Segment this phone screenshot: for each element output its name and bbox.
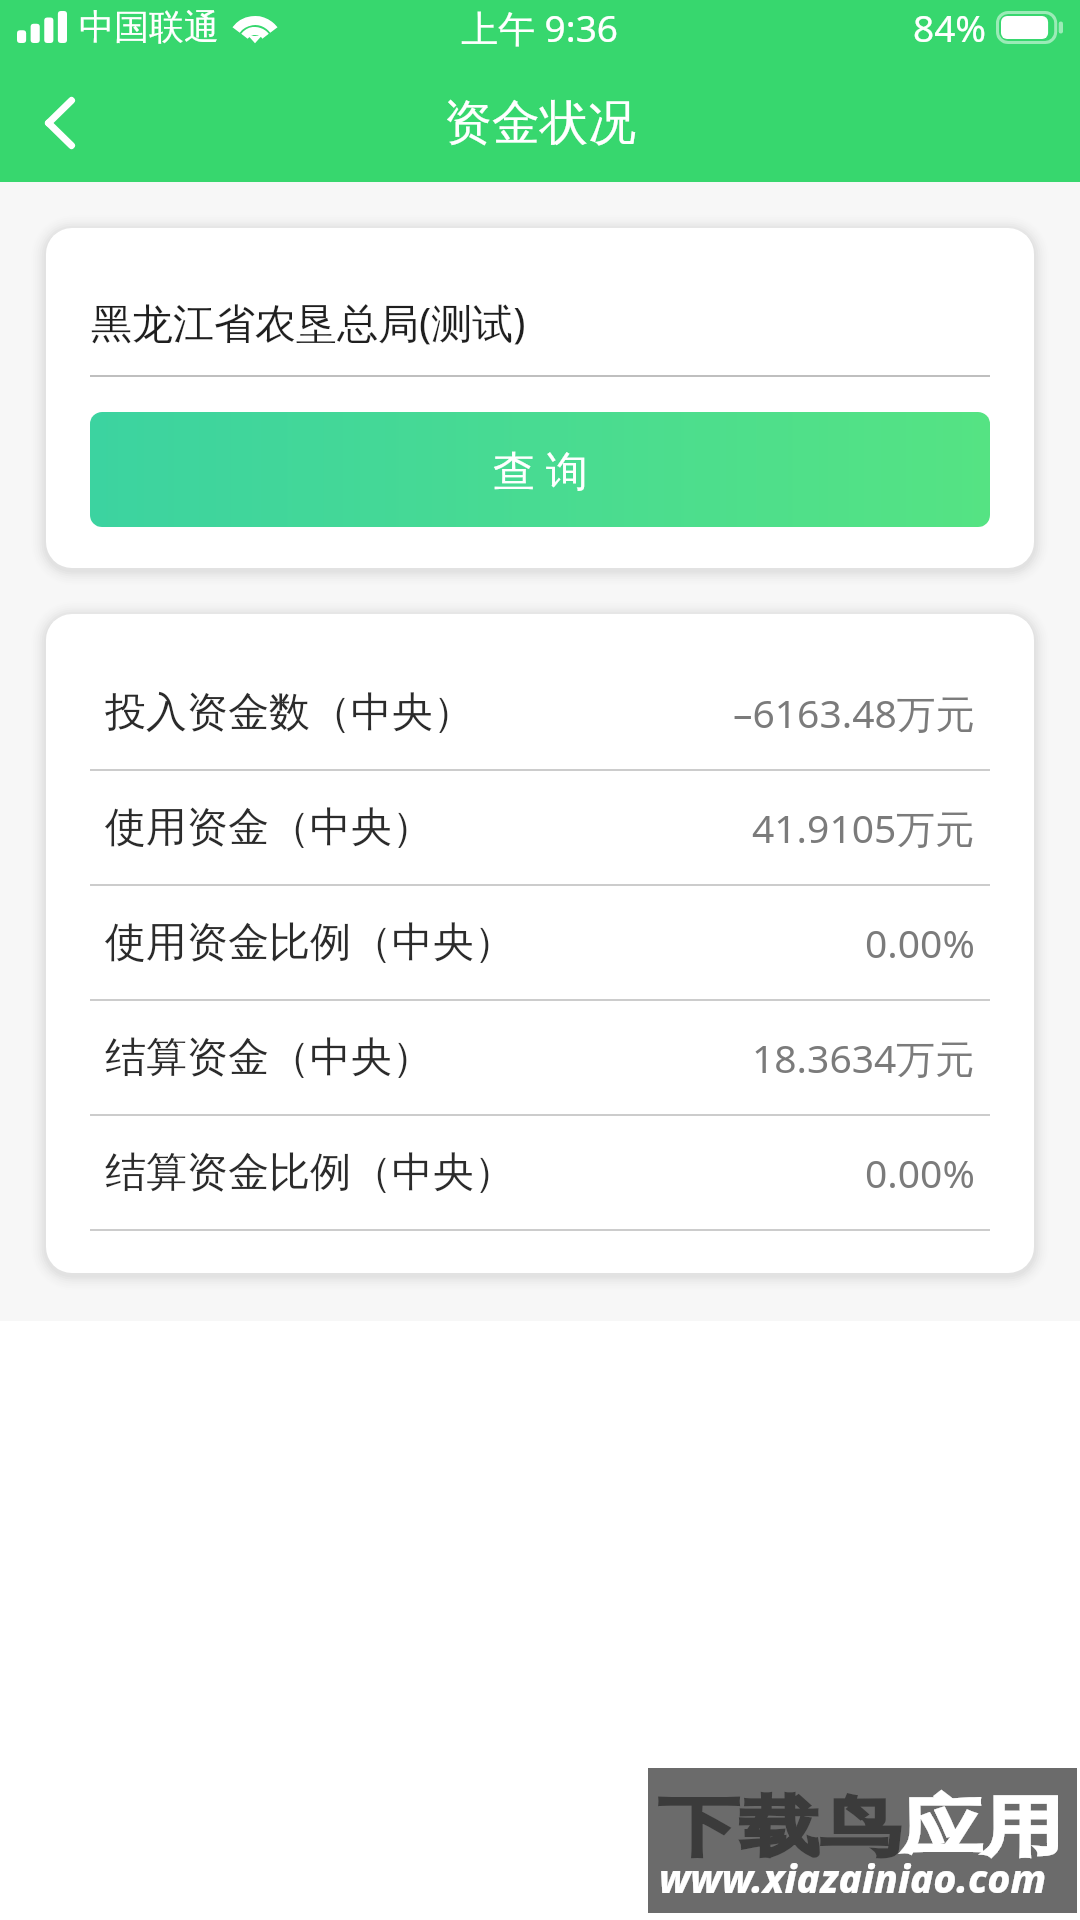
staticText: 中国联通 — [79, 5, 219, 49]
staticText: 投入资金数（中央） — [105, 687, 474, 739]
button[interactable]: 结算资金（中央） — [105, 1001, 975, 1114]
staticText: 结算资金（中央） — [105, 1032, 433, 1084]
button[interactable]: 结算资金比例（中央） — [105, 1116, 975, 1229]
staticText: –6163.48万元 — [733, 686, 975, 739]
staticText: 应用 — [901, 1787, 1063, 1869]
button[interactable]: Back — [0, 64, 120, 182]
staticText: 查 询 — [493, 441, 588, 498]
staticText: 84% — [913, 2, 987, 52]
staticText: 黑龙江省农垦总局(测试) — [91, 294, 526, 350]
staticText: 0.00% — [865, 916, 975, 969]
staticText: 上午 9:36 — [461, 2, 619, 53]
staticText: 结算资金比例（中央） — [105, 1147, 515, 1199]
staticText: 使用资金（中央） — [105, 802, 433, 854]
staticText: 资金状况 — [444, 93, 636, 153]
staticText: 下载鸟 — [658, 1787, 901, 1869]
button[interactable]: 投入资金数（中央） — [105, 656, 975, 769]
button[interactable]: 使用资金（中央） — [105, 771, 975, 884]
staticText: www.xiazainiao.com — [659, 1851, 1047, 1904]
staticText: 使用资金比例（中央） — [105, 917, 515, 969]
button[interactable]: 查 询 — [90, 412, 990, 527]
button[interactable]: 使用资金比例（中央） — [105, 886, 975, 999]
staticText: 0.00% — [865, 1146, 975, 1199]
staticText: 41.9105万元 — [752, 801, 975, 854]
staticText: 18.3634万元 — [752, 1031, 975, 1084]
